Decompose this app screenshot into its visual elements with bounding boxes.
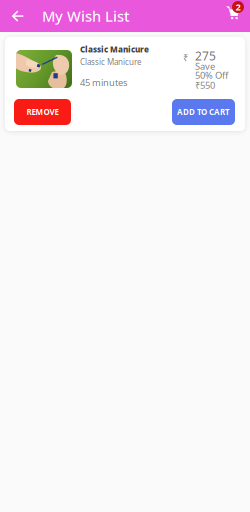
staticText: Classic Manicure [80, 57, 142, 67]
button[interactable]: Cart [226, 0, 245, 32]
button[interactable]: Back [0, 0, 35, 32]
button[interactable]: REMOVE [14, 99, 71, 125]
staticText: ADD TO CART [177, 107, 230, 117]
staticText: 2 [235, 1, 240, 13]
staticText: REMOVE [26, 107, 58, 117]
staticText: Classic Manicure [80, 44, 149, 55]
staticText: 275 [195, 48, 216, 64]
staticText: 45 minutes [80, 76, 127, 89]
staticText: Save [195, 60, 215, 72]
staticText: ₹550 [195, 79, 215, 91]
staticText: ₹ [183, 51, 188, 64]
staticText: 50% Off [195, 69, 228, 81]
staticText: My Wish List [42, 6, 130, 26]
button[interactable]: ADD TO CART [172, 99, 235, 125]
